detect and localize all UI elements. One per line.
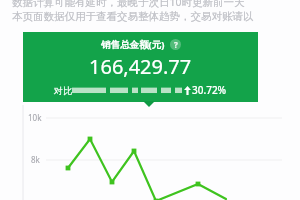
- staticText: 本页面数据仅用于查看交易整体趋势，交易对账请以: [12, 10, 254, 23]
- staticText: 30.72%: [192, 83, 227, 97]
- button[interactable]: 销售总金额(元): [101, 38, 181, 51]
- staticText: 166,429.77: [89, 53, 192, 80]
- staticText: 数据计算可能有延时，最晚于次日10时更新前一天: [12, 0, 245, 9]
- staticText: 10k: [28, 112, 42, 123]
- staticText: 销售总金额(元): [101, 38, 165, 51]
- button[interactable]: 销售总金额(元): [23, 32, 258, 102]
- staticText: ?: [174, 39, 178, 50]
- button[interactable]: Help: [170, 39, 181, 50]
- staticText: 对比: [54, 85, 72, 96]
- button[interactable]: 对比: [54, 83, 227, 97]
- staticText: 8k: [31, 154, 40, 165]
